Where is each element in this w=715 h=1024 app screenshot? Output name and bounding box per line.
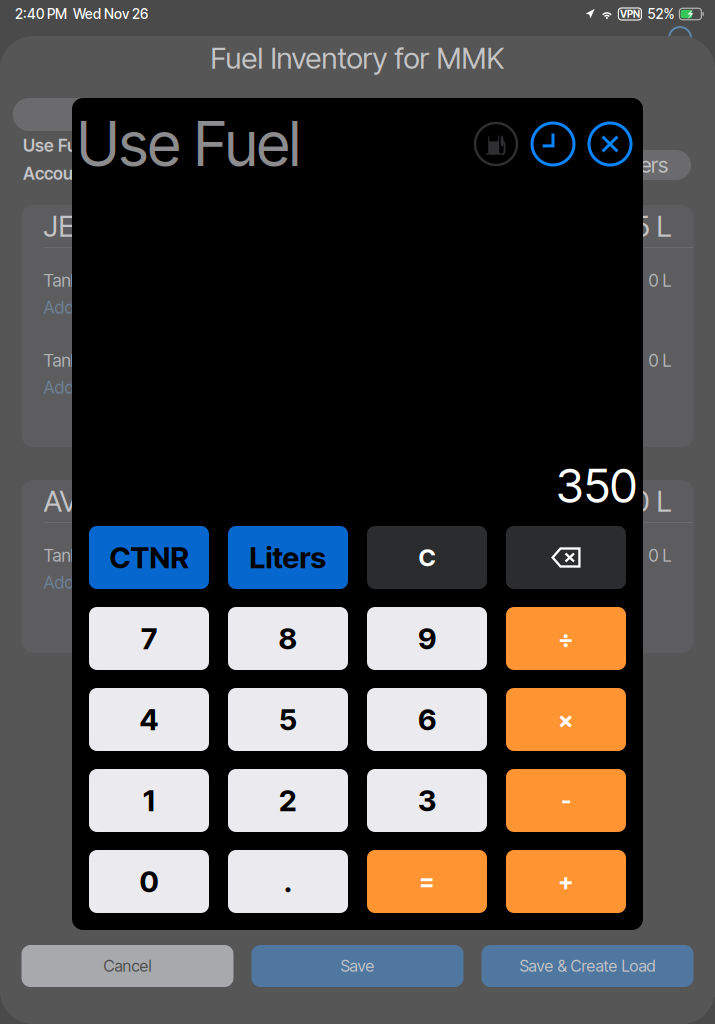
staticText: -: [561, 786, 571, 815]
button[interactable]: -: [506, 769, 626, 832]
staticText: +: [558, 867, 574, 896]
button[interactable]: 9: [367, 607, 487, 670]
button[interactable]: 5: [228, 688, 348, 751]
button[interactable]: =: [367, 850, 487, 913]
staticText: Tank 1: [43, 270, 89, 291]
button[interactable]: Save: [251, 945, 463, 987]
staticText: JET A-1: [43, 208, 138, 244]
staticText: 2: [279, 783, 297, 818]
button[interactable]: 1: [89, 769, 209, 832]
button[interactable]: 6: [367, 688, 487, 751]
staticText: 8: [278, 621, 297, 656]
button[interactable]: Add Fuel: [43, 297, 671, 318]
button[interactable]: 0: [89, 850, 209, 913]
staticText: =: [419, 867, 435, 896]
staticText: Add Fuel: [43, 377, 108, 398]
staticText: Wed Nov 26: [73, 5, 148, 22]
staticText: 0: [139, 864, 158, 899]
staticText: ÷: [558, 624, 574, 653]
button[interactable]: Cancel: [21, 945, 233, 987]
staticText: Use Fuel: [77, 107, 301, 181]
button[interactable]: Add Fuel: [43, 572, 671, 593]
button[interactable]: 7: [89, 607, 209, 670]
staticText: Tank 1: [43, 350, 89, 371]
button[interactable]: History: [532, 123, 574, 165]
staticText: Cancel: [103, 956, 151, 976]
staticText: Liters: [249, 540, 326, 575]
staticText: 6: [418, 702, 436, 737]
staticText: 350: [556, 457, 637, 514]
button[interactable]: Liters: [228, 526, 348, 589]
staticText: 5: [279, 702, 297, 737]
staticText: Save: [340, 956, 374, 976]
staticText: 4: [139, 702, 158, 737]
staticText: Add Fuel: [43, 297, 108, 318]
staticText: Save & Create Load: [519, 956, 655, 976]
staticText: 3: [418, 783, 436, 818]
button[interactable]: C: [367, 526, 487, 589]
staticText: 0 L: [648, 270, 671, 291]
button[interactable]: ÷: [506, 607, 626, 670]
button[interactable]: Close: [589, 123, 631, 165]
staticText: 9: [418, 621, 436, 656]
button[interactable]: CTNR: [89, 526, 209, 589]
button[interactable]: 2: [228, 769, 348, 832]
staticText: Account: [23, 163, 89, 184]
staticText: C: [418, 543, 435, 572]
staticText: Tank 1: [43, 545, 89, 566]
button[interactable]: Save & Create Load: [481, 945, 693, 987]
staticText: ×: [558, 705, 574, 734]
staticText: 0 L: [648, 350, 671, 371]
button[interactable]: Add Fuel: [43, 377, 671, 398]
button[interactable]: ×: [506, 688, 626, 751]
staticText: Liters: [618, 152, 668, 178]
button[interactable]: 4: [89, 688, 209, 751]
staticText: Use Fuel: [23, 135, 91, 156]
button[interactable]: .: [228, 850, 348, 913]
staticText: Add Fuel: [43, 572, 108, 593]
staticText: 52%: [647, 5, 674, 22]
staticText: CTNR: [109, 540, 188, 575]
button[interactable]: 3: [367, 769, 487, 832]
button[interactable]: Fuel type: [475, 123, 517, 165]
staticText: .: [283, 864, 292, 899]
staticText: AVGAS: [43, 483, 131, 519]
staticText: VPN: [620, 8, 640, 20]
staticText: 0 L: [648, 545, 671, 566]
staticText: Fuel Inventory for MMK: [210, 40, 504, 76]
button[interactable]: Liters: [595, 150, 691, 180]
button[interactable]: 8: [228, 607, 348, 670]
button[interactable]: +: [506, 850, 626, 913]
staticText: 2345 L: [583, 208, 671, 244]
staticText: 2:40 PM: [15, 5, 67, 22]
button[interactable]: Delete: [506, 526, 626, 589]
staticText: 7: [141, 621, 157, 656]
staticText: 0 L: [632, 483, 671, 519]
staticText: 1: [143, 783, 155, 818]
